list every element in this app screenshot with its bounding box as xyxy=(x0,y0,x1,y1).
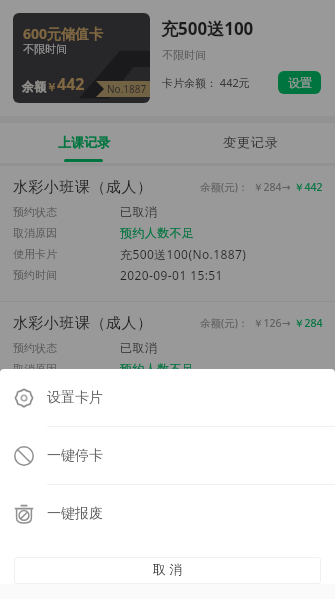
button[interactable]: 取 消 xyxy=(14,557,321,584)
staticText: 不限时间 xyxy=(23,42,67,56)
staticText: 水彩小班课（成人） xyxy=(13,314,153,333)
staticText: 预约时间 xyxy=(13,404,57,418)
staticText: ￥442 xyxy=(294,180,323,194)
staticText: 水彩小班课（成人） xyxy=(13,178,153,197)
staticText: 取消原因 xyxy=(13,362,57,376)
staticText: 442 xyxy=(57,73,85,95)
staticText: 变更记录 xyxy=(223,134,279,150)
button[interactable]: Scrap card xyxy=(0,485,335,542)
staticText: 预约状态 xyxy=(13,205,57,219)
staticText: → xyxy=(282,317,291,329)
staticText: 余额(元)： xyxy=(200,180,249,194)
staticText: ￥284 xyxy=(253,180,282,194)
staticText: 充500送100(No.1887) xyxy=(120,246,247,262)
staticText: 预约人数不足 xyxy=(120,361,195,376)
other: Scrap card xyxy=(14,504,34,524)
staticText: 预约时间 xyxy=(13,268,57,282)
other: Settings xyxy=(14,388,34,408)
staticText: 600元储值卡 xyxy=(23,24,104,43)
button[interactable]: Stop card xyxy=(0,427,335,484)
staticText: 一键报废 xyxy=(47,505,103,523)
staticText: 取 消 xyxy=(153,560,183,578)
staticText: 使用卡片 xyxy=(13,247,57,261)
staticText: ￥284 xyxy=(294,316,323,330)
staticText: 取消原因 xyxy=(13,226,57,240)
staticText: 设置 xyxy=(288,75,312,90)
staticText: 不限时间 xyxy=(162,48,206,62)
staticText: 已取消 xyxy=(120,340,158,355)
staticText: 余额 xyxy=(22,79,46,94)
staticText: 余额(元)： xyxy=(200,316,249,330)
button[interactable]: 变更记录 xyxy=(167,123,335,163)
staticText: 已取消 xyxy=(120,204,158,219)
button[interactable]: 上课记录 xyxy=(0,123,167,163)
staticText: 充500送100 xyxy=(161,17,254,40)
staticText: 预约人数不足 xyxy=(120,225,195,240)
staticText: 预约状态 xyxy=(13,341,57,355)
staticText: 一键停卡 xyxy=(47,447,103,465)
staticText: 使用卡片 xyxy=(13,383,57,397)
button[interactable]: 设置 xyxy=(278,71,321,94)
staticText: 上课记录 xyxy=(58,134,110,150)
staticText: 2020-09-01 15:51 xyxy=(120,267,223,283)
staticText: 卡片余额： 442元 xyxy=(162,75,250,90)
button[interactable]: Settings xyxy=(0,369,335,426)
staticText: ￥126 xyxy=(253,316,282,330)
staticText: No.1887 xyxy=(107,82,147,96)
staticText: → xyxy=(282,181,291,193)
staticText: ￥ xyxy=(46,80,57,94)
other: Stop card xyxy=(14,446,34,466)
staticText: 设置卡片 xyxy=(47,389,103,407)
